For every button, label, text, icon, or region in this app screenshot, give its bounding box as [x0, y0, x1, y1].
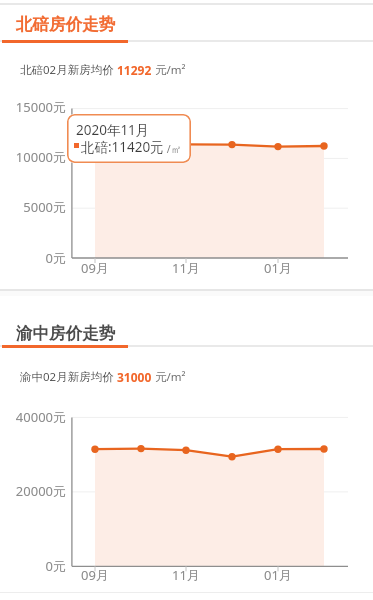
staticText: 渝中02月新房均价	[20, 369, 117, 385]
staticText: 20000元	[0, 482, 66, 500]
staticText: 09月	[60, 259, 130, 277]
staticText: 5000元	[0, 198, 66, 216]
staticText: 40000元	[0, 408, 66, 426]
staticText: 北碚:11420元	[81, 138, 164, 156]
staticText: 15000元	[0, 98, 66, 116]
staticText: 渝中房价走势	[16, 323, 115, 344]
staticText: 11月	[151, 259, 221, 277]
staticText: 北碚02月新房均价	[20, 62, 117, 78]
staticText: 北碚房价走势	[16, 14, 115, 35]
staticText: 01月	[243, 259, 313, 277]
staticText: 11292	[117, 62, 152, 78]
button[interactable]: 北碚房价走势	[0, 6, 373, 50]
staticText: 元/m²	[152, 62, 186, 78]
staticText: 01月	[243, 566, 313, 584]
staticText: 11月	[151, 566, 221, 584]
staticText: 0元	[0, 557, 66, 575]
staticText: 元/m²	[152, 369, 186, 385]
staticText: 09月	[60, 566, 130, 584]
staticText: 2020年11月	[76, 121, 150, 139]
button[interactable]: 渝中房价走势	[0, 315, 373, 359]
button[interactable]: 2020年11月	[67, 114, 191, 163]
staticText: /㎡	[164, 142, 182, 156]
staticText: 10000元	[0, 148, 66, 166]
staticText: 0元	[0, 249, 66, 267]
staticText: 31000	[117, 369, 152, 385]
